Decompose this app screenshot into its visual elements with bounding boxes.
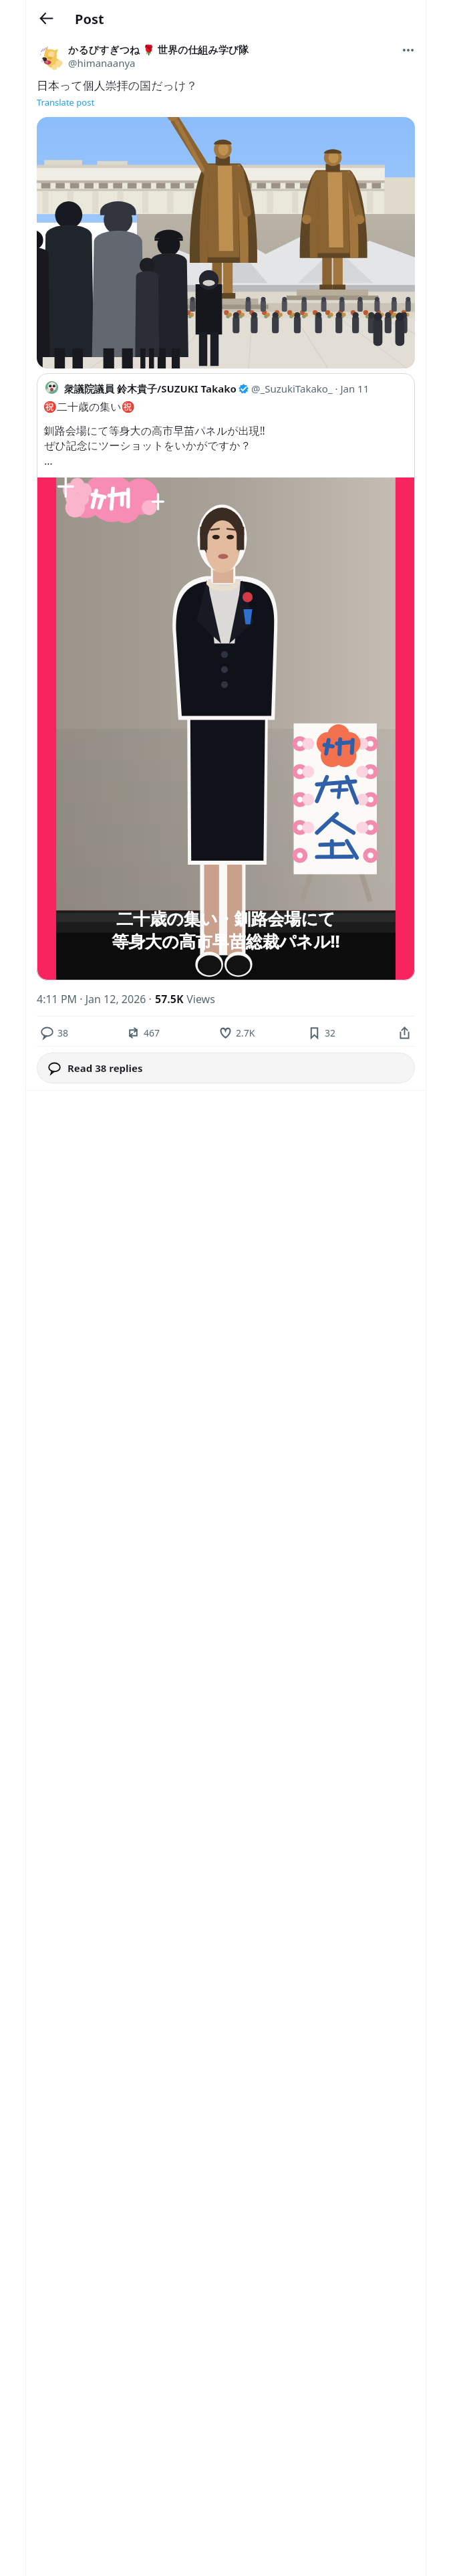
staticText: 2.7K [236,1027,255,1039]
staticText: Read 38 replies [67,1061,143,1075]
button[interactable]: Share [398,1022,411,1043]
staticText: @_SuzukiTakako_ · Jan 11 [251,382,369,395]
staticText: かるぴすぎつね 🌹 世界の仕組み学び隊 [68,43,249,56]
staticText: 衆議院議員 鈴木貴子/SUZUKI Takako [64,382,237,395]
button[interactable]: Profile picture [37,43,64,71]
staticText: 467 [144,1027,160,1039]
button[interactable]: Bookmark [308,1022,336,1043]
staticText: 4:11 PM · Jan 12, 2026 · [37,992,155,1006]
staticText: Views [184,992,215,1006]
staticText: ㊗️二十歳の集い㊗️ [43,401,135,414]
staticText: Post [75,10,104,28]
button[interactable]: Reply [41,1022,69,1043]
button[interactable]: 衆議院議員 鈴木貴子/SUZUKI Takako [37,373,415,980]
button[interactable]: Read 38 replies [37,1053,415,1083]
staticText: 32 [325,1027,336,1039]
staticText: 57.5K [155,992,184,1006]
staticText: 日本って個人崇拝の国だっけ？ [37,79,198,93]
button[interactable]: Like [219,1022,255,1043]
staticText: 釧路会場にて等身大の高市早苗パネルが出現‼️ ぜひ記念にツーショットをいかがです… [44,423,265,468]
button[interactable]: Translate post [37,96,95,108]
staticText: @himanaanya [68,56,136,70]
button[interactable]: Repost [127,1022,160,1043]
staticText: 等身大の高市早苗総裁パネル‼️ [112,930,340,952]
button[interactable]: More options [397,39,420,62]
button[interactable]: Photo [37,117,415,368]
staticText: 38 [57,1027,69,1039]
staticText: 二十歳の集い・釧路会場にて [116,909,335,930]
button[interactable]: Back [33,5,59,31]
staticText: Translate post [37,96,95,108]
